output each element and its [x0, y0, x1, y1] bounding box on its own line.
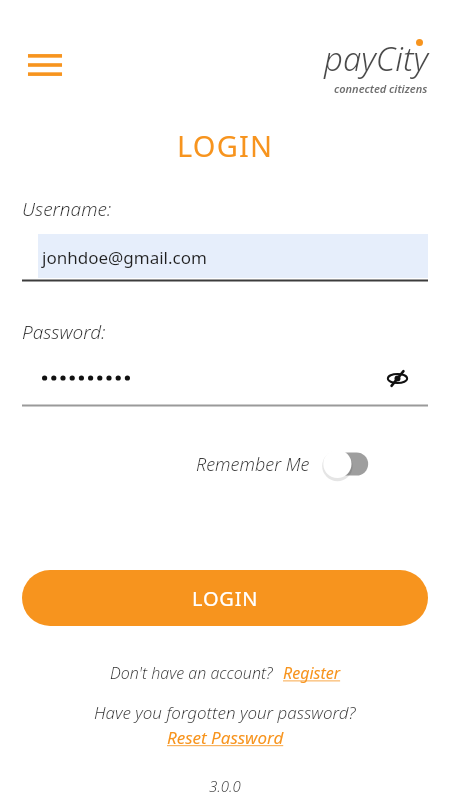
button[interactable]: Reset Password — [167, 726, 284, 749]
staticText: Have you forgotten your password? — [94, 701, 356, 724]
staticText: Password: — [22, 319, 106, 345]
staticText: payCity — [324, 36, 428, 81]
staticText: Register — [283, 662, 341, 684]
staticText: Remember Me — [196, 452, 310, 477]
staticText: 3.0.0 — [209, 776, 241, 796]
staticText: Reset Password — [167, 726, 284, 749]
staticText: LOGIN — [177, 126, 274, 165]
staticText: Don't have an account? — [110, 662, 273, 684]
button[interactable]: LOGIN — [22, 570, 428, 626]
button[interactable]: Show password — [22, 358, 428, 410]
staticText: jonhdoe@gmail.com — [42, 246, 207, 269]
staticText: connected citizens — [334, 81, 428, 96]
button[interactable]: Register — [283, 662, 341, 684]
button[interactable]: Show password — [377, 358, 417, 398]
button[interactable]: jonhdoe@gmail.com — [22, 234, 428, 284]
button[interactable]: Remember Me — [196, 446, 372, 482]
staticText: Username: — [22, 196, 112, 222]
button[interactable]: Menu — [22, 46, 68, 84]
staticText: LOGIN — [192, 585, 259, 612]
